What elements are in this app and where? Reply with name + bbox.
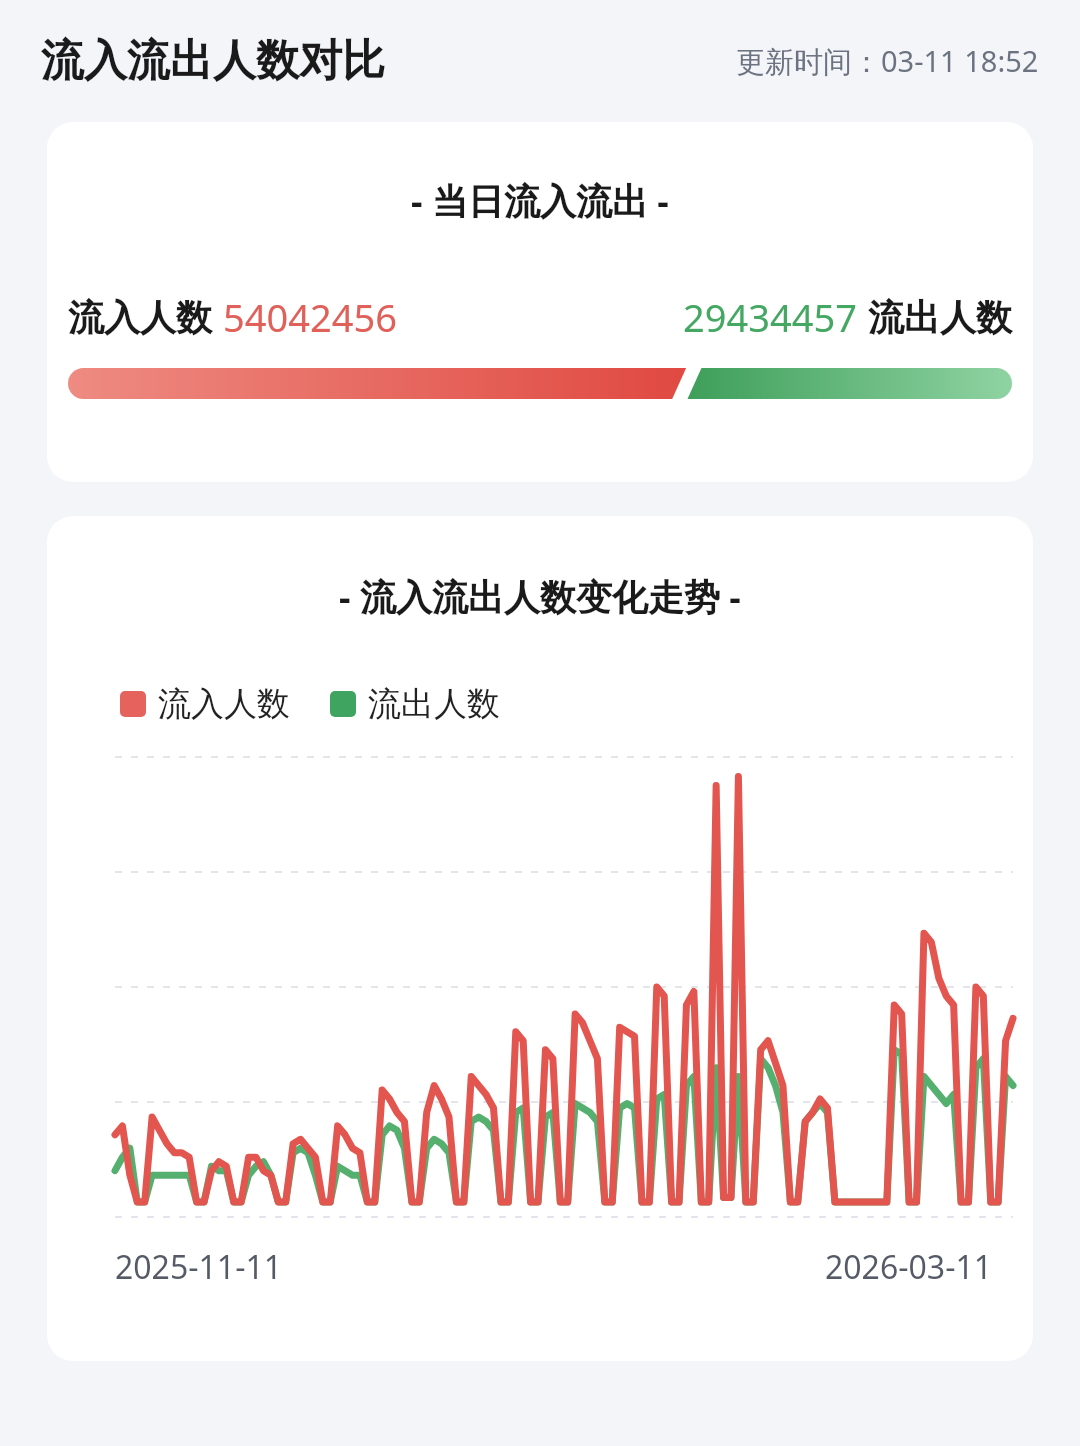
staticText: 29434457 <box>683 291 857 343</box>
staticText: - 流入流出人数变化走势 - <box>47 572 1033 621</box>
staticText: 54042456 <box>223 291 397 343</box>
staticText: 更新时间：03-11 18:52 <box>736 41 1039 81</box>
staticText: 流入人数 <box>158 683 290 725</box>
staticText: - 当日流入流出 - <box>411 176 669 225</box>
staticText: 流入流出人数对比 <box>41 34 385 88</box>
button[interactable]: - 流入流出人数变化走势 - <box>47 516 1033 1361</box>
button[interactable]: - 当日流入流出 - <box>47 122 1033 482</box>
staticText: 流入人数 <box>68 295 212 340</box>
staticText: 流出人数 <box>868 295 1012 340</box>
staticText: 2026-03-11 <box>825 1245 993 1289</box>
staticText: 流出人数 <box>368 683 500 725</box>
staticText: 2025-11-11 <box>115 1245 283 1289</box>
